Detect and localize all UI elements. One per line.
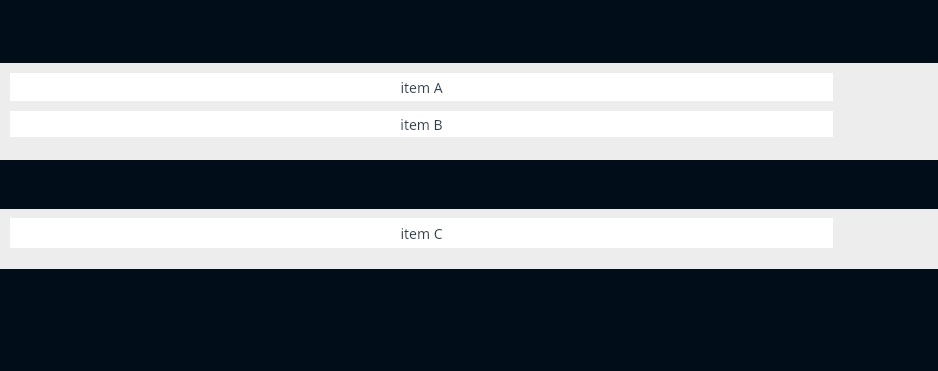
button[interactable]: item B — [10, 111, 833, 137]
staticText: item A — [400, 78, 443, 97]
staticText: item B — [400, 115, 443, 134]
button[interactable]: item C — [10, 218, 833, 248]
button[interactable]: item A — [10, 73, 833, 101]
staticText: item C — [400, 224, 443, 243]
